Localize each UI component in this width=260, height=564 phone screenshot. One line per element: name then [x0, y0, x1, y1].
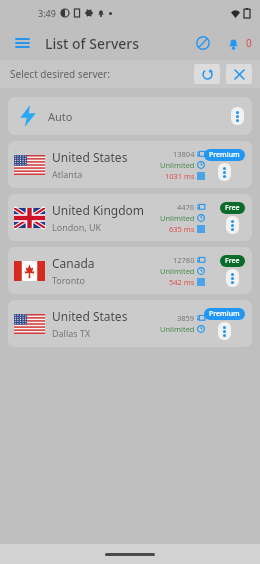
staticText: Auto — [48, 109, 73, 124]
staticText: Free — [225, 256, 240, 266]
button[interactable]: Connection status — [190, 30, 216, 56]
button[interactable]: Canada — [8, 247, 252, 294]
staticText: Unlimited — [160, 160, 195, 170]
staticText: Canada — [52, 255, 95, 271]
staticText: Premium — [209, 150, 240, 160]
staticText: Dallas TX — [52, 327, 91, 339]
staticText: London, UK — [52, 221, 102, 233]
staticText: United Kingdom — [52, 202, 145, 218]
staticText: 0 — [246, 36, 252, 50]
button[interactable]: More options — [218, 322, 231, 340]
staticText: List of Servers — [45, 34, 140, 53]
staticText: Unlimited — [160, 324, 195, 334]
staticText: Toronto — [52, 274, 86, 286]
staticText: 3:49 — [38, 7, 56, 19]
button[interactable]: Refresh — [194, 64, 220, 84]
staticText: United States — [52, 308, 128, 324]
staticText: Select desired server: — [10, 67, 110, 81]
button[interactable]: Free — [225, 256, 240, 266]
button[interactable]: Menu — [8, 29, 36, 57]
button[interactable]: United Kingdom — [8, 194, 252, 241]
staticText: 1031 ms — [165, 171, 195, 181]
staticText: Unlimited — [160, 266, 195, 276]
button[interactable]: Premium — [209, 150, 240, 160]
staticText: United States — [52, 149, 128, 165]
staticText: 3859 — [177, 313, 195, 323]
button[interactable]: Auto — [8, 97, 252, 135]
staticText: Atlanta — [52, 168, 83, 180]
button[interactable]: Close — [226, 64, 252, 84]
button[interactable]: Notifications — [220, 30, 246, 56]
staticText: 635 ms — [169, 224, 195, 234]
staticText: 542 ms — [169, 277, 195, 287]
button[interactable]: Premium — [209, 309, 240, 319]
staticText: Free — [225, 203, 240, 213]
staticText: 13804 — [173, 149, 195, 159]
staticText: 4476 — [177, 202, 195, 212]
staticText: Premium — [209, 309, 240, 319]
button[interactable]: United States — [8, 300, 252, 347]
button[interactable]: More options — [226, 216, 239, 234]
button[interactable]: United States — [8, 141, 252, 188]
button[interactable]: More options — [231, 107, 244, 125]
staticText: Unlimited — [160, 213, 195, 223]
staticText: 12780 — [173, 255, 195, 265]
button[interactable]: More options — [226, 269, 239, 287]
button[interactable]: Free — [225, 203, 240, 213]
button[interactable]: More options — [218, 163, 231, 181]
